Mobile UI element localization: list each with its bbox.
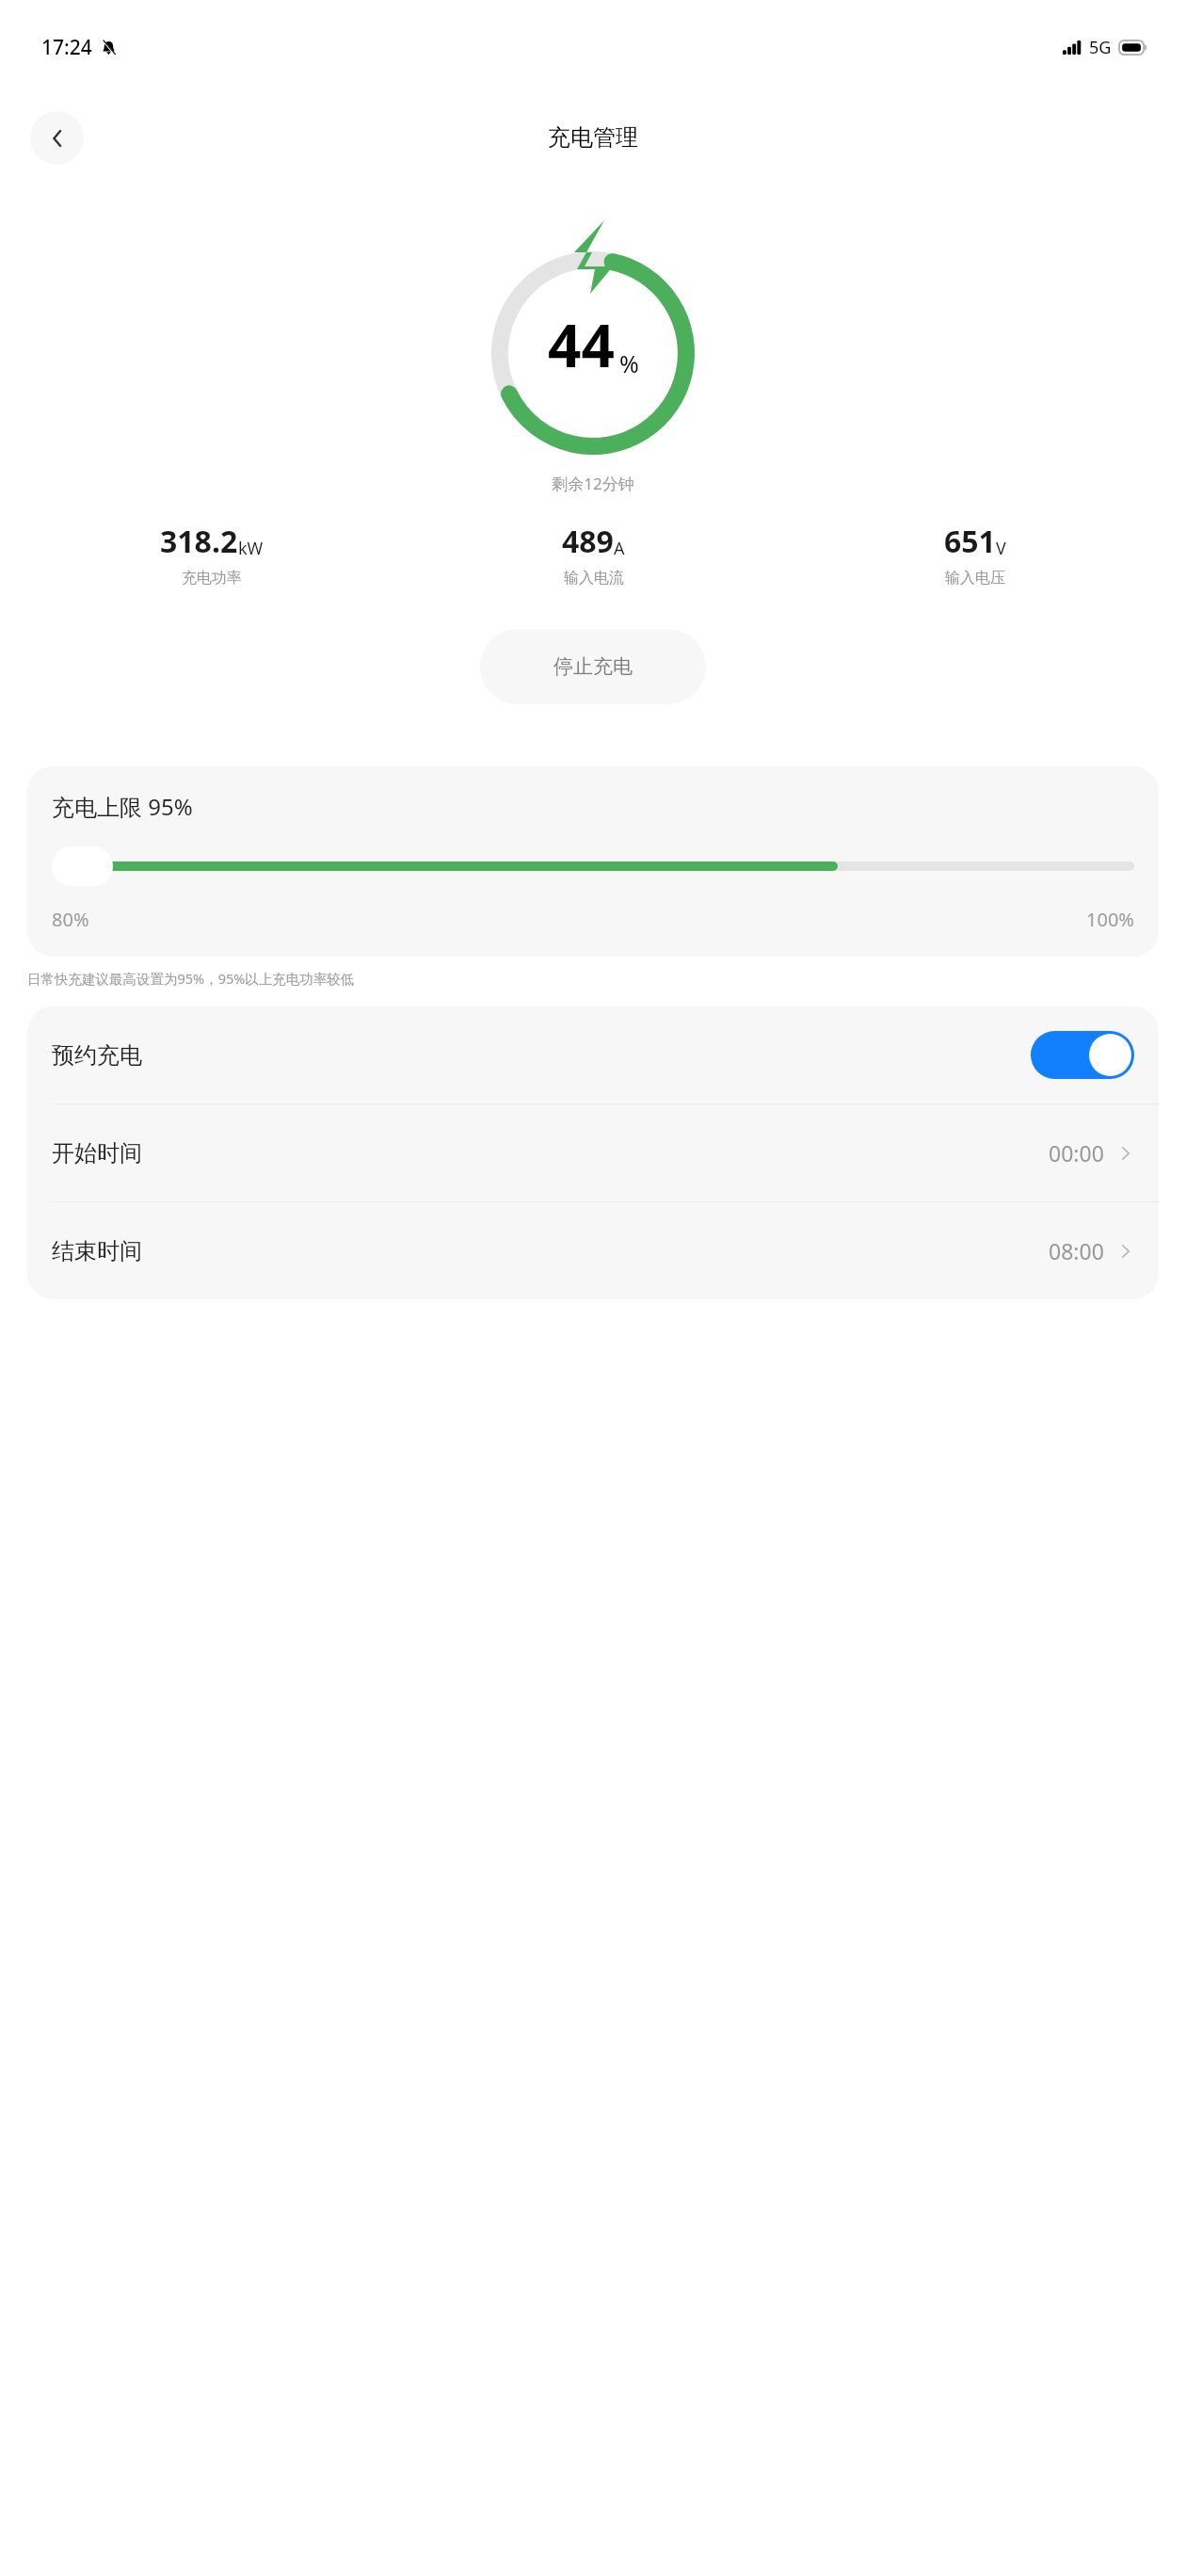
button[interactable]: Back (30, 111, 84, 165)
staticText: 充电管理 (548, 123, 638, 152)
button[interactable]: 结束时间 (27, 1202, 1159, 1299)
staticText: 44 (548, 305, 615, 384)
staticText: 充电上限 95% (52, 791, 193, 822)
staticText: 08:00 (1049, 1236, 1104, 1265)
button[interactable]: 开始时间 (27, 1104, 1159, 1201)
button[interactable] (69, 861, 1134, 871)
staticText: 结束时间 (52, 1237, 1049, 1265)
staticText: 17:24 (41, 34, 92, 61)
staticText: 651 (944, 521, 996, 562)
staticText: 剩余12分钟 (0, 473, 1186, 494)
staticText: kW (238, 537, 264, 560)
staticText: 318.2 (160, 521, 238, 562)
button[interactable]: Charge limit slider (52, 846, 113, 886)
staticText: 停止充电 (553, 654, 633, 679)
button[interactable]: Scheduled charging toggle (1031, 1031, 1134, 1079)
staticText: 489 (562, 521, 614, 562)
button[interactable]: 停止充电 (480, 629, 706, 704)
staticText: 5G (1089, 36, 1112, 59)
staticText: % (619, 347, 639, 379)
staticText: V (996, 537, 1006, 560)
staticText: 00:00 (1049, 1138, 1104, 1167)
staticText: 开始时间 (52, 1139, 1049, 1167)
staticText: 预约充电 (52, 1041, 1031, 1070)
staticText: 100% (1086, 907, 1134, 932)
staticText: 充电功率 (182, 569, 242, 588)
staticText: 80% (52, 907, 89, 932)
staticText: A (614, 537, 625, 560)
staticText: 日常快充建议最高设置为95%，95%以上充电功率较低 (27, 969, 355, 988)
staticText: 输入电压 (945, 569, 1005, 588)
staticText: 输入电流 (564, 569, 624, 588)
button[interactable]: 预约充电 (27, 1006, 1159, 1103)
